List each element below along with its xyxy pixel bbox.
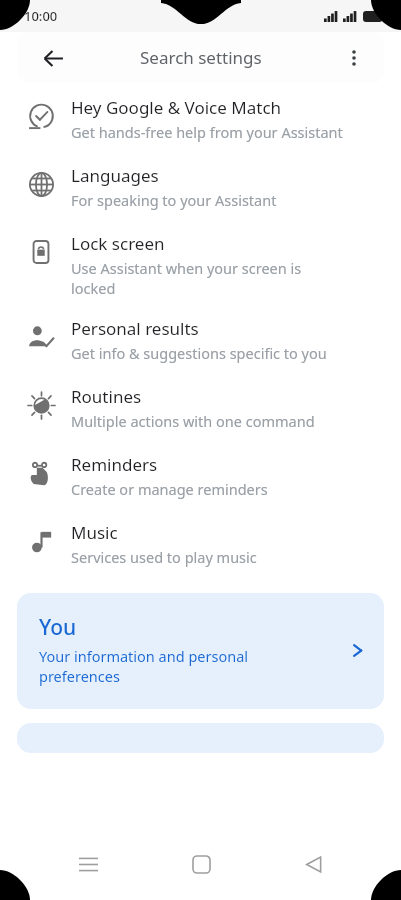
staticText: Your information and personal preference… [39,646,249,687]
button[interactable]: Languages [0,163,401,210]
staticText: Hey Google & Voice Match [71,96,282,119]
staticText: Use Assistant when your screen is locked [71,258,302,298]
button[interactable]: Home [177,840,225,888]
staticText: Services used to play music [71,547,257,567]
staticText: You [39,613,77,642]
button[interactable]: Back [33,38,73,78]
button[interactable]: Back [289,840,337,888]
staticText: Create or manage reminders [71,479,268,499]
staticText: Music [71,521,118,544]
staticText: For speaking to your Assistant [71,190,277,210]
staticText: Lock screen [71,232,165,255]
staticText: Personal results [71,317,199,340]
button[interactable]: Music [0,520,401,567]
button[interactable]: More options [334,38,374,78]
staticText: Search settings [140,46,262,69]
staticText: Get info & suggestions specific to you [71,343,327,363]
staticText: Get hands-free help from your Assistant [71,122,343,142]
button[interactable]: Reminders [0,452,401,499]
staticText: Multiple actions with one command [71,411,315,431]
staticText: Languages [71,164,159,187]
button[interactable]: Routines [0,384,401,431]
button[interactable]: Recent apps [64,840,112,888]
button[interactable]: Personal results [0,316,401,363]
button[interactable]: You [17,593,384,709]
button[interactable]: Hey Google & Voice Match [0,95,401,142]
button[interactable]: Lock screen [0,231,401,298]
staticText: 10:00 [24,7,58,25]
staticText: Routines [71,385,142,408]
button[interactable] [17,723,384,753]
staticText: Reminders [71,453,158,476]
